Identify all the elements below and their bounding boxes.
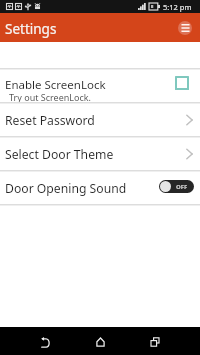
- button[interactable]: Enable ScreenLock: [0, 69, 200, 102]
- staticText: 5:12 pm: [163, 2, 192, 12]
- staticText: Try out ScreenLock.: [9, 91, 92, 103]
- button[interactable]: Reset Password: [0, 103, 200, 136]
- button[interactable]: Select Door Theme: [0, 137, 200, 170]
- staticText: Door Opening Sound: [5, 180, 159, 197]
- button[interactable]: Door Opening Sound toggle: [159, 180, 194, 193]
- button[interactable]: Back: [32, 329, 58, 355]
- button[interactable]: Door Opening Sound: [0, 171, 200, 204]
- staticText: Enable ScreenLock: [5, 77, 106, 93]
- button[interactable]: Home: [87, 329, 113, 355]
- staticText: OFF: [176, 183, 188, 191]
- staticText: Reset Password: [5, 112, 186, 129]
- button[interactable]: Menu: [178, 21, 192, 35]
- staticText: Select Door Theme: [5, 146, 186, 163]
- button[interactable]: Recent apps: [142, 329, 168, 355]
- staticText: Settings: [5, 20, 57, 38]
